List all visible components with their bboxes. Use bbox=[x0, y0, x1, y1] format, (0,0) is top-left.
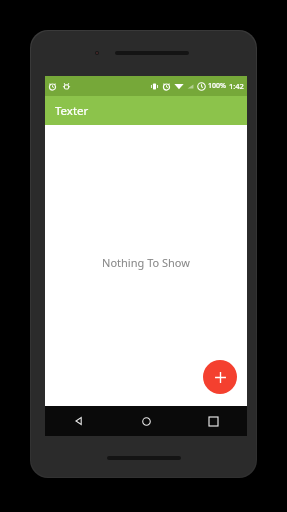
staticText: 100% bbox=[208, 81, 226, 91]
staticText: Texter bbox=[55, 103, 89, 119]
button[interactable]: Recent apps bbox=[180, 406, 247, 436]
button[interactable]: Back bbox=[45, 406, 113, 436]
staticText: Nothing To Show bbox=[102, 255, 190, 270]
staticText: 1:42 bbox=[229, 81, 244, 91]
button[interactable]: Home bbox=[113, 406, 180, 436]
button[interactable]: Add new message bbox=[203, 360, 237, 394]
